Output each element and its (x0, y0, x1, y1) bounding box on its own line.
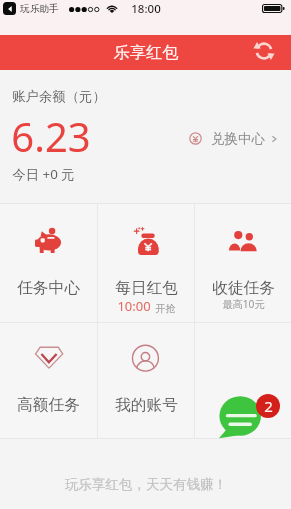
staticText: 乐享红包 (113, 42, 179, 63)
staticText: 玩乐享红包，天天有钱赚！ (65, 476, 227, 493)
staticText: 2 (264, 396, 273, 416)
staticText: 10:00 (117, 297, 151, 315)
staticText: 任务中心 (17, 278, 80, 298)
staticText: 今日 +0 元 (12, 165, 75, 183)
button[interactable]: 任务中心 (0, 204, 97, 232)
staticText: 玩乐助手 (20, 3, 59, 15)
staticText: 兑换中心 (211, 130, 265, 147)
button[interactable]: Back (3, 2, 16, 15)
staticText: 账户余额（元） (12, 88, 106, 105)
staticText: 6.23 (11, 109, 91, 163)
staticText: 收徒任务 (212, 278, 275, 298)
button[interactable]: 兑换中心 (189, 130, 278, 147)
staticText: 最高10元 (222, 297, 265, 311)
button[interactable]: 收徒任务 (195, 204, 291, 232)
button[interactable]: Refresh (250, 37, 278, 65)
button[interactable]: Messages (219, 394, 265, 440)
staticText: 我的账号 (115, 395, 178, 415)
staticText: 高额任务 (17, 395, 80, 415)
staticText: 每日红包 (115, 278, 178, 298)
staticText: 开抢 (155, 302, 176, 315)
button[interactable]: 高额任务 (0, 323, 97, 351)
button[interactable]: 我的账号 (98, 323, 194, 351)
button[interactable]: 每日红包 (98, 204, 194, 232)
staticText: 18:00 (131, 1, 161, 17)
